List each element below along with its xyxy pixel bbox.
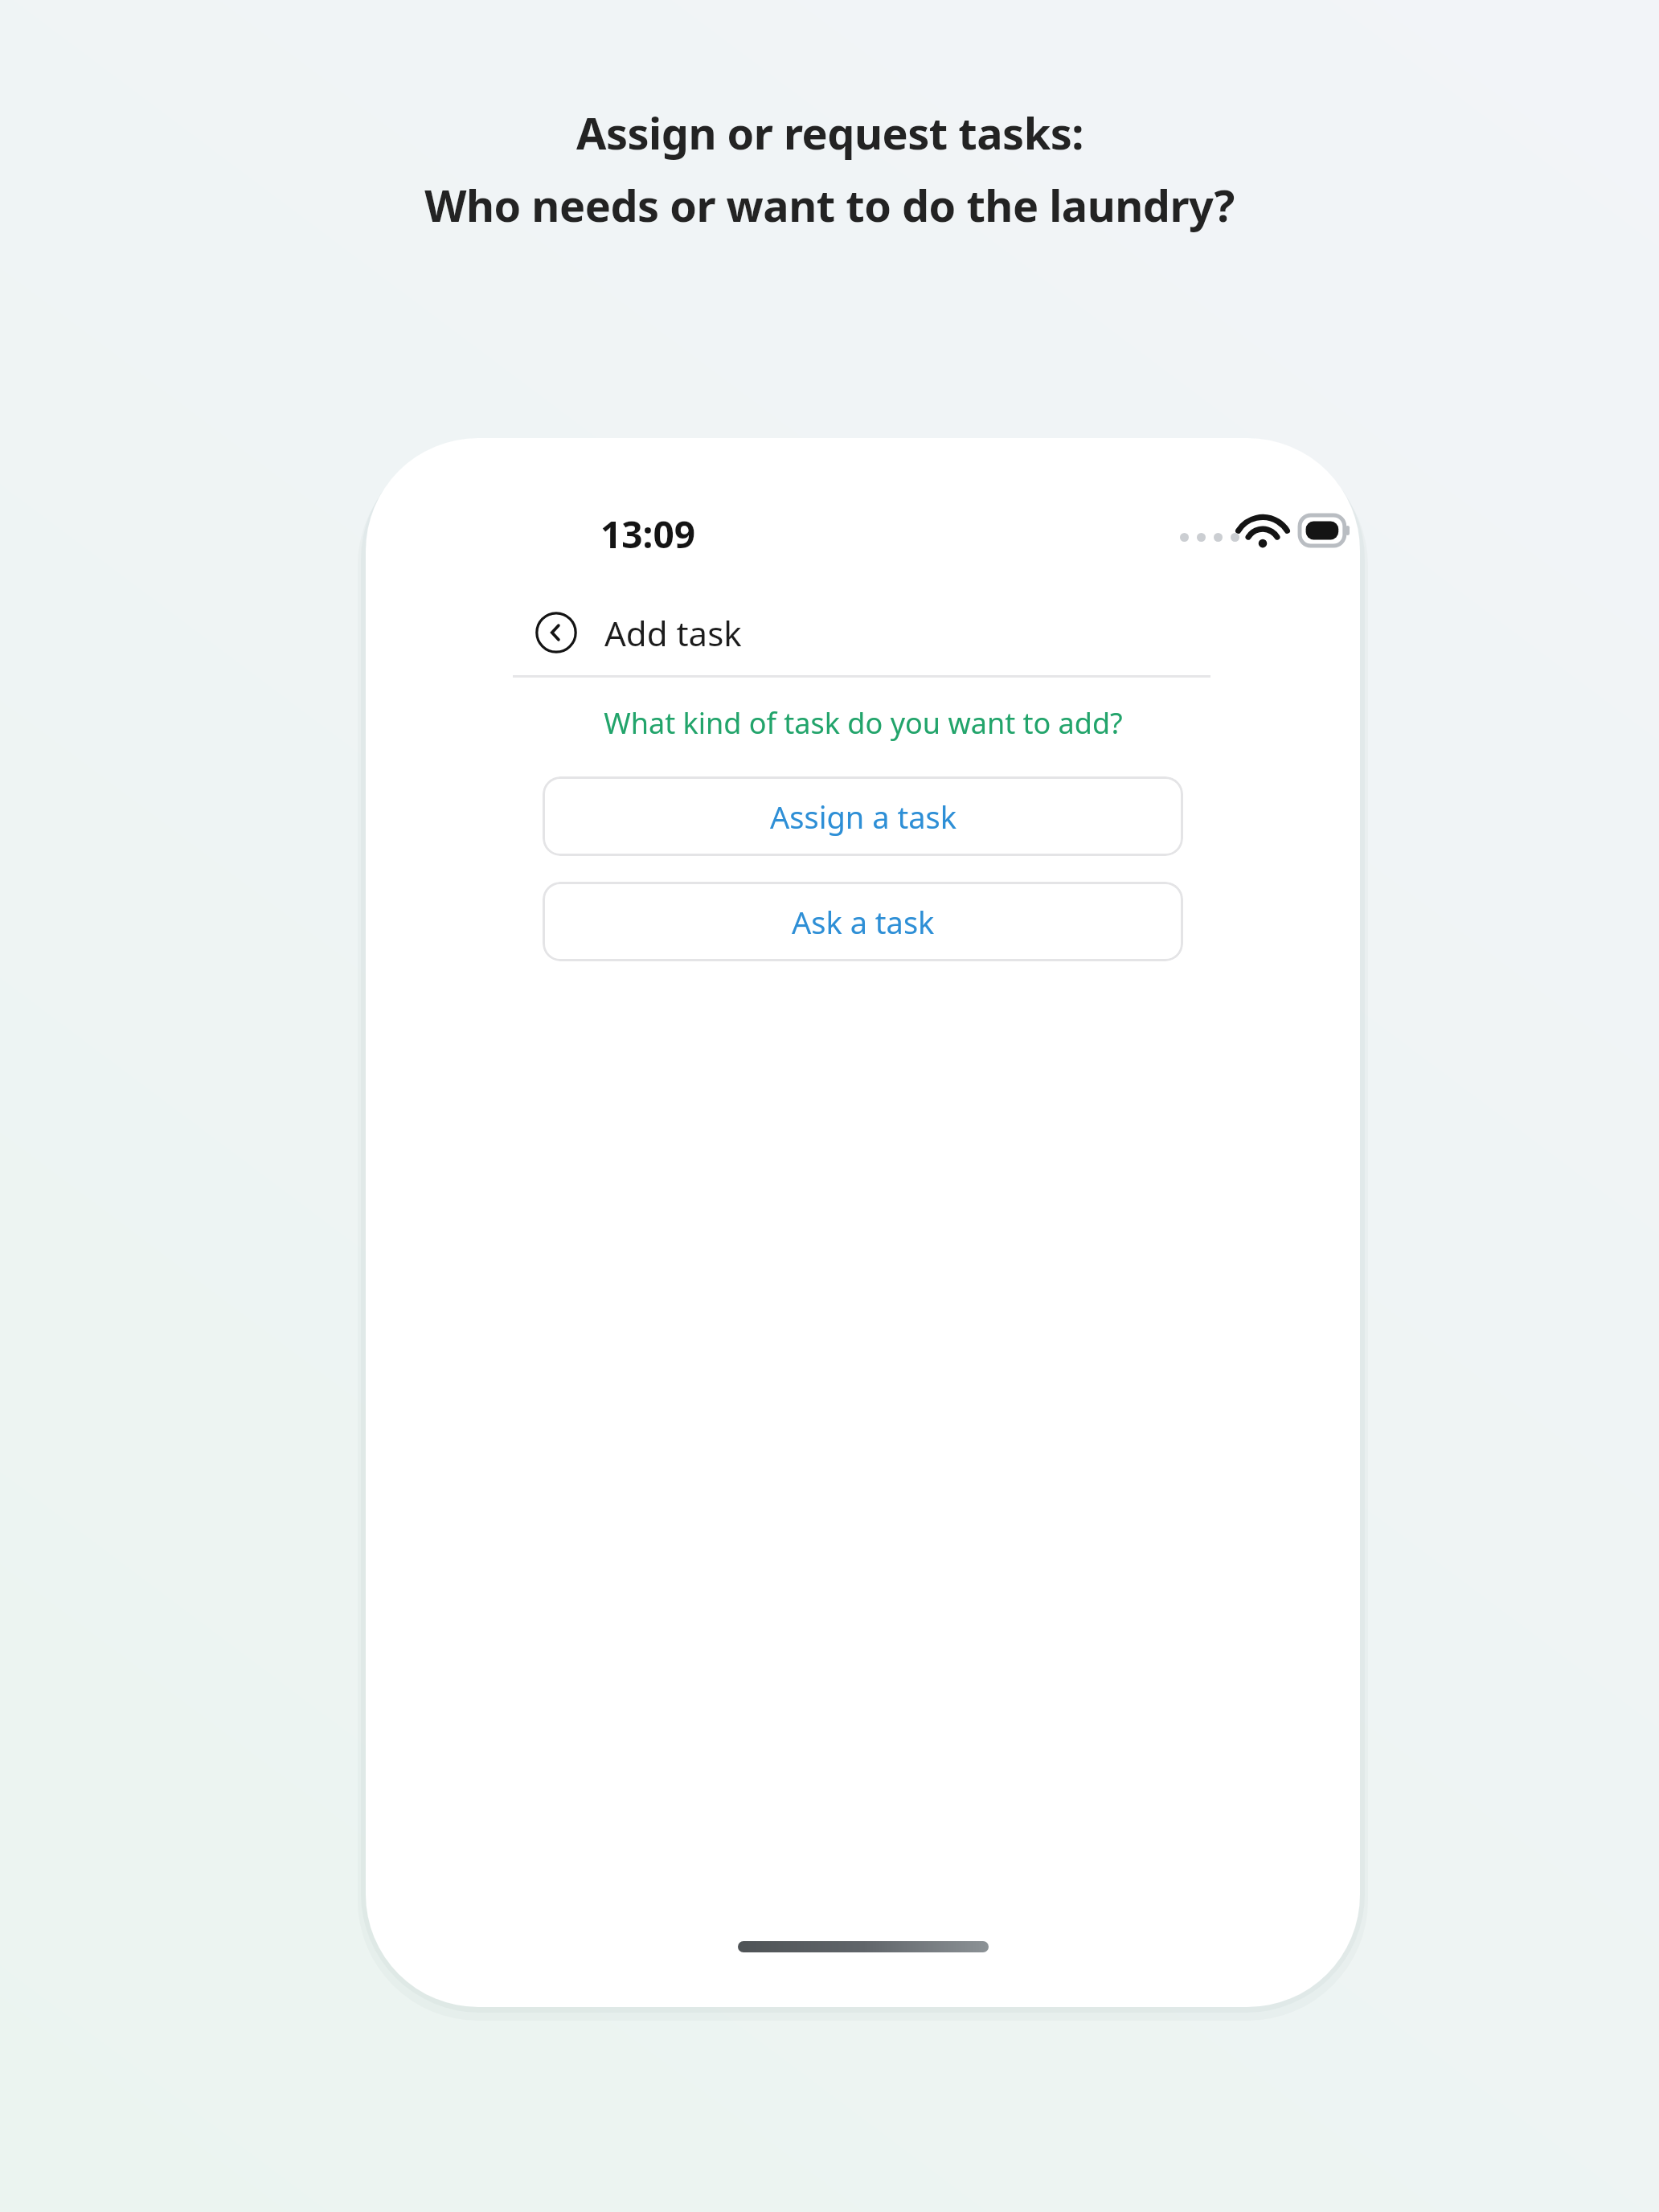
- staticText: Assign a task: [770, 796, 956, 838]
- staticText: Add task: [604, 610, 742, 656]
- staticText: Who needs or want to do the laundry?: [424, 175, 1235, 235]
- staticText: What kind of task do you want to add?: [604, 703, 1123, 743]
- staticText: 13:09: [600, 509, 696, 559]
- button[interactable]: Ask a task: [543, 882, 1183, 961]
- staticText: Assign or request tasks:: [576, 103, 1083, 162]
- button[interactable]: Assign a task: [543, 776, 1183, 856]
- button[interactable]: Back: [530, 607, 582, 658]
- staticText: Ask a task: [792, 901, 935, 943]
